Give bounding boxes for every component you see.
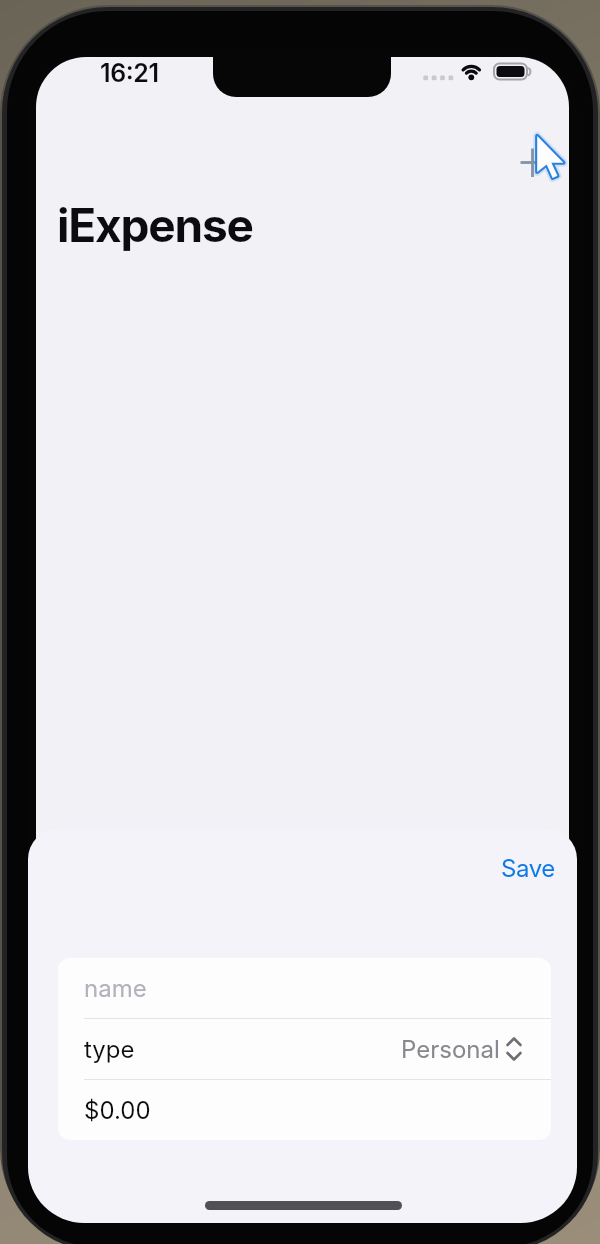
staticText: iExpense (57, 197, 253, 253)
button[interactable]: $0.00 (58, 1080, 551, 1140)
button[interactable]: name (58, 958, 551, 1018)
staticText: Personal (401, 1035, 500, 1064)
button[interactable]: type (58, 1019, 551, 1079)
staticText: name (84, 974, 147, 1003)
staticText: $0.00 (84, 1096, 151, 1125)
staticText: Save (501, 854, 555, 883)
staticText: 16:21 (100, 58, 159, 88)
button[interactable]: Save (495, 848, 561, 889)
staticText: type (84, 1035, 135, 1064)
